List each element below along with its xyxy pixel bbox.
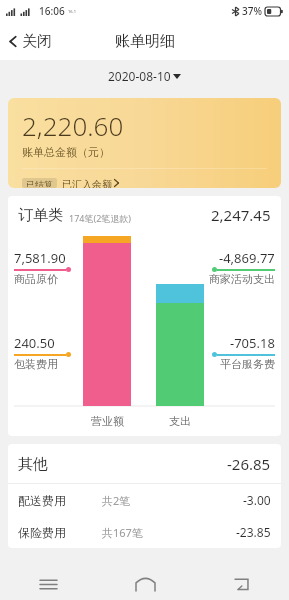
staticText: -4,869.77	[219, 249, 275, 267]
staticText: -3.00	[243, 492, 271, 508]
staticText: 营业额	[91, 414, 124, 428]
button[interactable]: Home	[97, 568, 193, 600]
button[interactable]: 配送费用	[8, 484, 281, 516]
staticText: 174笔(2笔退款)	[69, 212, 131, 224]
staticText: 平台服务费	[220, 357, 275, 371]
staticText: -705.18	[230, 334, 275, 352]
staticText: 订单类	[18, 206, 63, 225]
staticText: 37%	[242, 4, 262, 18]
staticText: 包装费用	[14, 357, 58, 371]
staticText: 共2笔	[102, 493, 131, 508]
staticText: 2020-08-10	[108, 68, 171, 84]
staticText: 商家活动支出	[209, 272, 275, 286]
button[interactable]: 已汇入余额	[62, 178, 119, 188]
staticText: 已汇入余额	[62, 178, 112, 188]
button[interactable]: 其他	[8, 444, 281, 483]
staticText: 其他	[18, 455, 48, 474]
staticText: 2,247.45	[211, 205, 271, 225]
staticText: 已结算	[26, 179, 53, 187]
button[interactable]: Back	[193, 568, 289, 600]
button[interactable]: 2020-08-10	[100, 64, 189, 88]
staticText: 账单明细	[115, 32, 175, 51]
button[interactable]: Recent apps	[0, 568, 97, 600]
staticText: -26.85	[227, 454, 271, 474]
staticText: 共167笔	[102, 525, 143, 540]
staticText: 关闭	[22, 32, 52, 51]
staticText: 账单总金额（元）	[22, 145, 110, 159]
staticText: 240.50	[14, 334, 55, 352]
button[interactable]: 关闭	[0, 26, 62, 57]
staticText: 16.1	[68, 9, 76, 14]
staticText: 16:06	[39, 4, 65, 18]
staticText: 商品原价	[14, 272, 58, 286]
staticText: 7,581.90	[14, 249, 66, 267]
staticText: 配送费用	[18, 493, 66, 508]
staticText: 支出	[169, 414, 191, 428]
staticText: 保险费用	[18, 525, 66, 540]
button[interactable]: 2,220.60	[8, 98, 281, 188]
staticText: 2,220.60	[22, 108, 124, 143]
staticText: -23.85	[236, 524, 271, 540]
button[interactable]: 保险费用	[8, 516, 281, 548]
